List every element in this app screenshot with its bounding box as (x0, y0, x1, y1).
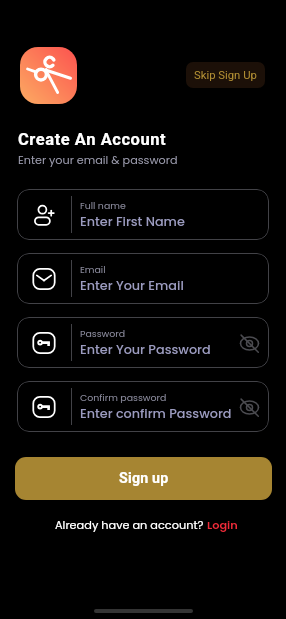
button[interactable]: Login (207, 517, 238, 533)
button[interactable]: Skip Sign Up (186, 62, 265, 88)
staticText: Already have an account? (55, 517, 207, 533)
button[interactable]: Sign up (15, 457, 272, 500)
staticText: Enter Your Password (80, 341, 211, 359)
staticText: Full name (80, 199, 126, 212)
button[interactable]: Full name (17, 189, 269, 240)
staticText: Create An Account (18, 130, 167, 149)
staticText: Email (80, 263, 106, 276)
button[interactable]: Toggle password visibility (234, 392, 264, 422)
staticText: Enter First Name (80, 213, 185, 231)
staticText: Enter your email & password (18, 152, 178, 168)
button[interactable]: Toggle password visibility (234, 328, 264, 358)
staticText: Password (80, 327, 126, 340)
staticText: Confirm password (80, 391, 167, 404)
staticText: Skip Sign Up (194, 69, 257, 82)
button[interactable]: Confirm password (17, 381, 269, 432)
button[interactable]: Email (17, 253, 269, 304)
button[interactable]: Password (17, 317, 269, 368)
staticText: Login (207, 517, 238, 533)
button[interactable]: App logo (20, 47, 77, 104)
staticText: Enter Your Email (80, 277, 184, 295)
staticText: Enter confirm Password (80, 405, 232, 423)
staticText: Sign up (119, 470, 169, 487)
